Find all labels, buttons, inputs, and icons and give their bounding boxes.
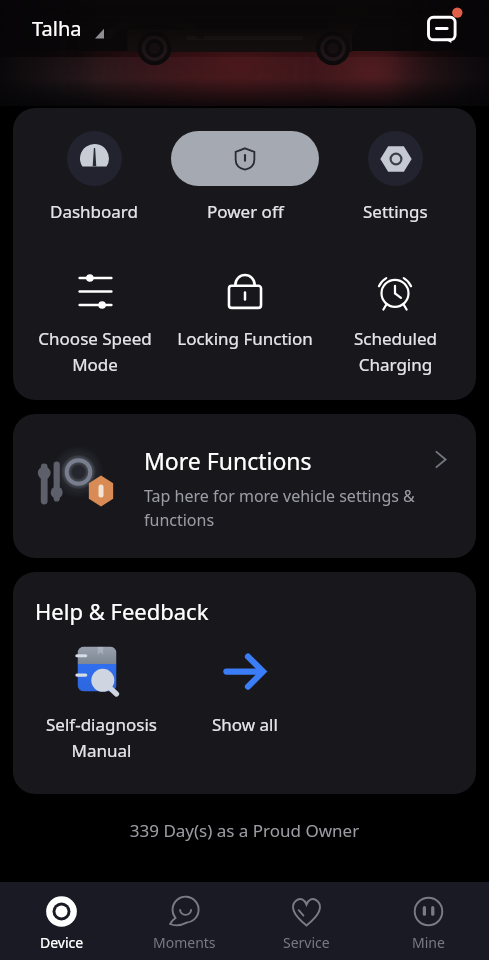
staticText: Settings [363,200,428,223]
button[interactable]: Talha [32,9,104,48]
staticText: Service [283,933,330,952]
button[interactable]: Settings [320,131,470,223]
button[interactable]: Scheduled Charging [320,272,470,376]
button[interactable]: Dashboard [19,131,170,223]
staticText: Choose Speed Mode [38,327,152,376]
staticText: Help & Feedback [35,596,209,626]
button[interactable]: Moments [123,882,245,960]
staticText: Self-diagnosis Manual [46,713,157,762]
button[interactable]: Device [0,882,123,960]
button[interactable]: Show all [173,644,316,736]
staticText: More Functions [144,445,312,476]
staticText: Mine [412,933,445,952]
staticText: Talha [32,15,82,42]
staticText: Scheduled Charging [354,327,437,376]
button[interactable]: Messages [422,5,468,51]
staticText: Locking Function [177,327,313,350]
staticText: Dashboard [50,200,139,223]
button[interactable]: Power off [170,131,320,223]
staticText: Tap here for more vehicle settings & fun… [144,485,431,531]
button[interactable]: More Functions [13,414,476,558]
staticText: Power off [207,200,284,223]
button[interactable]: Choose Speed Mode [19,272,170,376]
button[interactable]: Service [245,882,367,960]
staticText: 339 Day(s) as a Proud Owner [0,819,489,842]
button[interactable]: Locking Function [170,272,320,350]
staticText: Device [40,933,84,952]
button[interactable]: Self-diagnosis Manual [30,644,173,762]
button[interactable]: Mine [367,882,489,960]
staticText: Show all [212,713,278,736]
staticText: Moments [153,933,216,952]
